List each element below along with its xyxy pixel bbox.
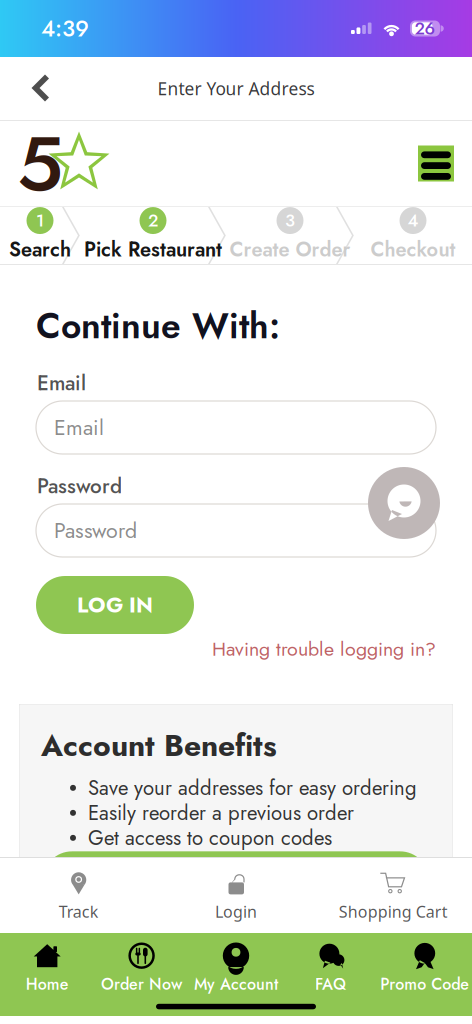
button[interactable]: Home (0, 942, 94, 996)
button[interactable]: Track (0, 857, 157, 933)
button[interactable]: Promo Code (378, 942, 472, 996)
staticText: 4:39 (41, 12, 89, 45)
button[interactable]: Shopping Cart (315, 857, 472, 933)
button[interactable]: CREATE ACCOUNT (43, 851, 429, 909)
button[interactable]: FAQ (283, 942, 378, 996)
staticText: Password (37, 471, 122, 501)
staticText: 26 (414, 16, 435, 41)
button[interactable]: My Account (189, 942, 283, 996)
button[interactable]: Back (0, 57, 71, 119)
button[interactable]: Login (157, 857, 315, 933)
staticText: 5 (17, 108, 63, 219)
staticText: Home (26, 973, 69, 996)
staticText: Save your addresses for easy ordering (88, 773, 417, 802)
staticText: LOG IN (77, 590, 153, 620)
staticText: Email (37, 368, 86, 398)
staticText: Pick Restaurant (84, 235, 222, 264)
staticText: Email (54, 412, 104, 443)
staticText: Create Order (229, 235, 350, 264)
staticText: Get access to coupon codes (88, 823, 332, 852)
staticText: Track (59, 901, 99, 922)
button[interactable]: LOG IN (36, 576, 194, 634)
staticText: Password (54, 515, 137, 546)
staticText: Order Now (101, 973, 182, 996)
staticText: 3 (285, 208, 295, 233)
staticText: Account Benefits (41, 724, 277, 767)
staticText: FAQ (315, 973, 346, 996)
staticText: My Account (194, 973, 278, 996)
staticText: 2 (148, 208, 158, 233)
staticText: Having trouble logging in? (212, 635, 436, 663)
staticText: Shopping Cart (339, 901, 448, 922)
staticText: Continue With: (36, 300, 280, 352)
button[interactable]: Menu (418, 145, 454, 181)
staticText: Search (9, 235, 71, 264)
staticText: CREATE ACCOUNT (139, 865, 333, 896)
staticText: Checkout (370, 235, 455, 264)
button[interactable]: Order Now (94, 942, 189, 996)
staticText: Easily reorder a previous order (88, 798, 354, 827)
staticText: Enter Your Address (157, 77, 314, 100)
button[interactable]: Chat support (368, 467, 440, 539)
button[interactable]: Having trouble logging in? (212, 635, 436, 663)
staticText: Promo Code (380, 973, 469, 996)
staticText: Login (215, 901, 257, 922)
staticText: 1 (36, 208, 44, 233)
staticText: 4 (407, 208, 418, 233)
